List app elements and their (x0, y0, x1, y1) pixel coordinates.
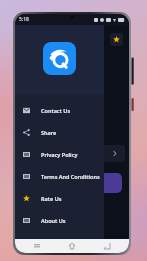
button[interactable]: Rate Us (15, 187, 104, 209)
staticText: Rate Us (41, 195, 62, 202)
button[interactable]: Contact Us (15, 99, 104, 121)
button[interactable] (98, 173, 122, 193)
button[interactable]: Terms And Conditions (15, 165, 104, 187)
button[interactable]: About Us (15, 209, 104, 231)
button[interactable]: Share (15, 121, 104, 143)
staticText: Terms And Conditions (41, 173, 100, 180)
button[interactable]: Home (66, 240, 78, 252)
button[interactable]: Favorites (110, 33, 123, 46)
staticText: Contact Us (41, 107, 71, 114)
button[interactable]: Recents (31, 240, 43, 252)
button[interactable]: Next (103, 145, 125, 162)
button[interactable]: Privacy Policy (15, 143, 104, 165)
staticText: Share (41, 129, 57, 136)
staticText: 5:18 (19, 16, 29, 23)
staticText: Privacy Policy (41, 151, 78, 158)
button[interactable]: Back (101, 240, 113, 252)
staticText: About Us (41, 217, 66, 224)
